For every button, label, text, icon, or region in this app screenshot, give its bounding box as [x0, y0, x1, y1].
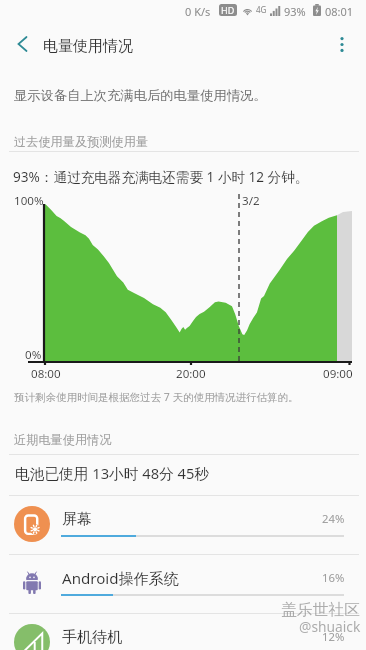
- staticText: 电池已使用 13小时 48分 45秒: [15, 463, 210, 483]
- staticText: 电量使用情况: [43, 37, 133, 56]
- staticText: 盖乐世社区: [281, 600, 360, 620]
- staticText: 16%: [322, 570, 345, 585]
- staticText: 显示设备自上次充满电后的电量使用情况。: [14, 87, 267, 104]
- staticText: 24%: [322, 511, 345, 526]
- staticText: 0 K/s: [185, 4, 211, 19]
- staticText: 0%: [25, 347, 42, 363]
- button[interactable]: Back: [2, 24, 42, 64]
- staticText: 4G: [256, 4, 267, 15]
- staticText: 12%: [322, 629, 345, 644]
- staticText: 93%：通过充电器充满电还需要 1 小时 12 分钟。: [13, 167, 309, 186]
- staticText: 93%: [284, 4, 306, 19]
- staticText: 100%: [14, 193, 44, 209]
- button[interactable]: Android操作系统: [0, 554, 366, 613]
- staticText: 3/2: [242, 193, 260, 209]
- staticText: 08:00: [31, 366, 61, 382]
- staticText: 预计剩余使用时间是根据您过去 7 天的使用情况进行估算的。: [14, 390, 299, 404]
- staticText: 09:00: [323, 366, 353, 382]
- staticText: 屏幕: [62, 509, 93, 528]
- staticText: @shuaick: [299, 617, 361, 636]
- button[interactable]: 屏幕: [0, 495, 366, 554]
- button[interactable]: 手机待机: [0, 613, 366, 650]
- staticText: Android操作系统: [62, 568, 179, 589]
- staticText: 过去使用量及预测使用量: [14, 134, 149, 149]
- staticText: 手机待机: [62, 627, 123, 646]
- button[interactable]: More options: [322, 24, 362, 64]
- staticText: 近期电量使用情况: [14, 432, 112, 447]
- staticText: HD: [221, 4, 235, 16]
- staticText: 20:00: [176, 366, 206, 382]
- staticText: 08:01: [325, 4, 354, 19]
